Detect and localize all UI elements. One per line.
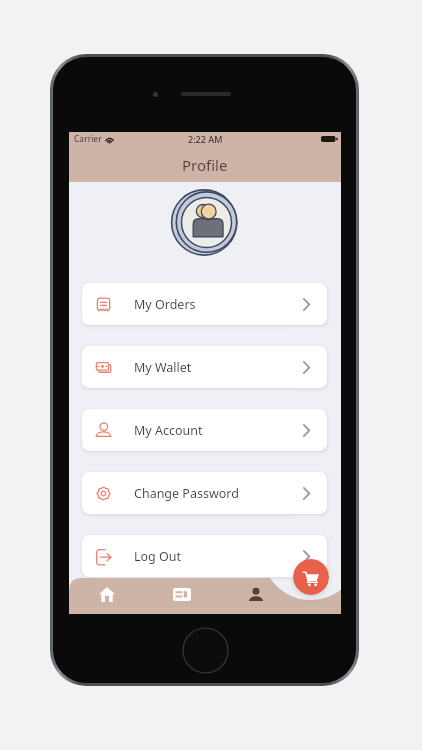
button[interactable]: Profile — [237, 576, 275, 612]
staticText: My Orders — [134, 296, 196, 313]
staticText: Profile — [182, 155, 228, 175]
button[interactable]: Home — [88, 576, 126, 612]
button[interactable]: Log Out — [82, 535, 327, 577]
staticText: My Wallet — [134, 359, 192, 376]
button[interactable]: Change Password — [82, 472, 327, 514]
staticText: Log Out — [134, 548, 182, 565]
button[interactable]: My Orders — [82, 283, 327, 325]
button[interactable]: Cart — [293, 559, 329, 595]
staticText: 2:22 AM — [188, 133, 223, 145]
staticText: Carrier — [74, 133, 102, 145]
button[interactable]: My Wallet — [82, 346, 327, 388]
button[interactable]: My Account — [82, 409, 327, 451]
button[interactable]: Orders — [163, 576, 201, 612]
staticText: Change Password — [134, 485, 239, 502]
staticText: My Account — [134, 422, 203, 439]
